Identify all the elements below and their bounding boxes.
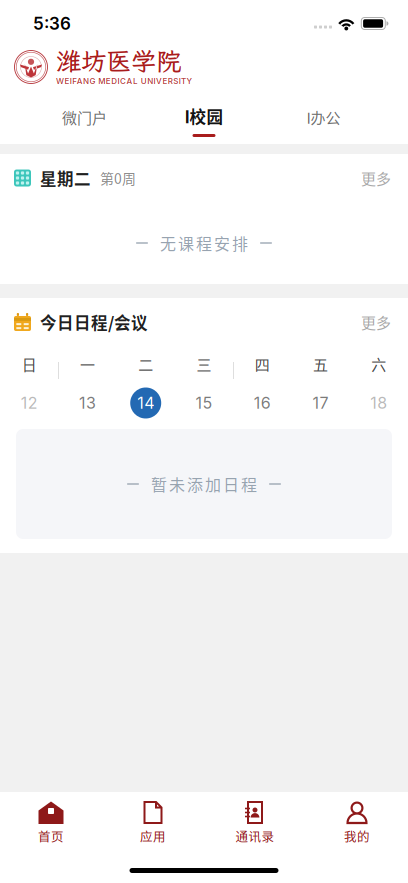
staticText: 二 [138, 353, 153, 375]
button[interactable]: 应用 [102, 792, 204, 852]
staticText: 更多 [361, 167, 391, 189]
staticText: 13 [79, 393, 96, 413]
staticText: 星期二 [40, 166, 91, 190]
staticText: 16 [254, 393, 271, 413]
staticText: I校园 [184, 104, 223, 128]
staticText: 通讯录 [235, 827, 274, 845]
staticText: 今日日程/会议 [40, 310, 148, 334]
staticText: 应用 [140, 827, 166, 845]
staticText: 17 [313, 393, 329, 413]
staticText: 15 [195, 393, 212, 413]
staticText: 我的 [344, 827, 370, 845]
staticText: 12 [21, 393, 38, 413]
button[interactable]: I校园 [169, 98, 239, 144]
staticText: 更多 [361, 311, 391, 333]
staticText: 三 [196, 353, 211, 375]
staticText: WEIFANG MEDICAL UNIVERSITY [56, 76, 192, 86]
staticText: 六 [371, 353, 386, 375]
staticText: 日 [22, 353, 37, 375]
staticText: 潍坊医学院 [56, 44, 181, 78]
button[interactable]: 我的 [306, 792, 408, 852]
staticText: 一 [80, 353, 95, 375]
button[interactable]: I办公 [239, 98, 408, 144]
staticText: 暂未添加日程 [151, 472, 257, 496]
staticText: 四 [255, 353, 270, 375]
staticText: 微门户 [62, 106, 107, 128]
button[interactable]: 更多 [354, 304, 398, 340]
staticText: 五 [313, 353, 328, 375]
staticText: 5:36 [33, 13, 71, 34]
staticText: 无课程安排 [160, 231, 248, 255]
button[interactable]: 更多 [354, 160, 398, 196]
button[interactable]: 通讯录 [204, 792, 306, 852]
button[interactable]: 微门户 [0, 98, 169, 144]
staticText: I办公 [306, 106, 340, 128]
button[interactable]: 首页 [0, 792, 102, 852]
staticText: 首页 [38, 827, 64, 845]
staticText: 18 [370, 393, 387, 413]
staticText: 第0周 [100, 168, 136, 188]
staticText: 14 [137, 393, 154, 413]
